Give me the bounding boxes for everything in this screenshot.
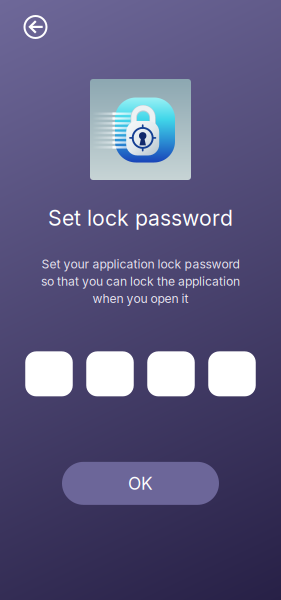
staticText: Set lock password bbox=[48, 205, 233, 231]
staticText: Set your application lock password bbox=[41, 257, 239, 271]
button[interactable]: OK bbox=[62, 462, 219, 505]
staticText: OK bbox=[128, 473, 153, 494]
staticText: when you open it bbox=[92, 291, 188, 306]
button[interactable]: Back bbox=[14, 6, 56, 48]
staticText: so that you can lock the application bbox=[41, 274, 240, 289]
